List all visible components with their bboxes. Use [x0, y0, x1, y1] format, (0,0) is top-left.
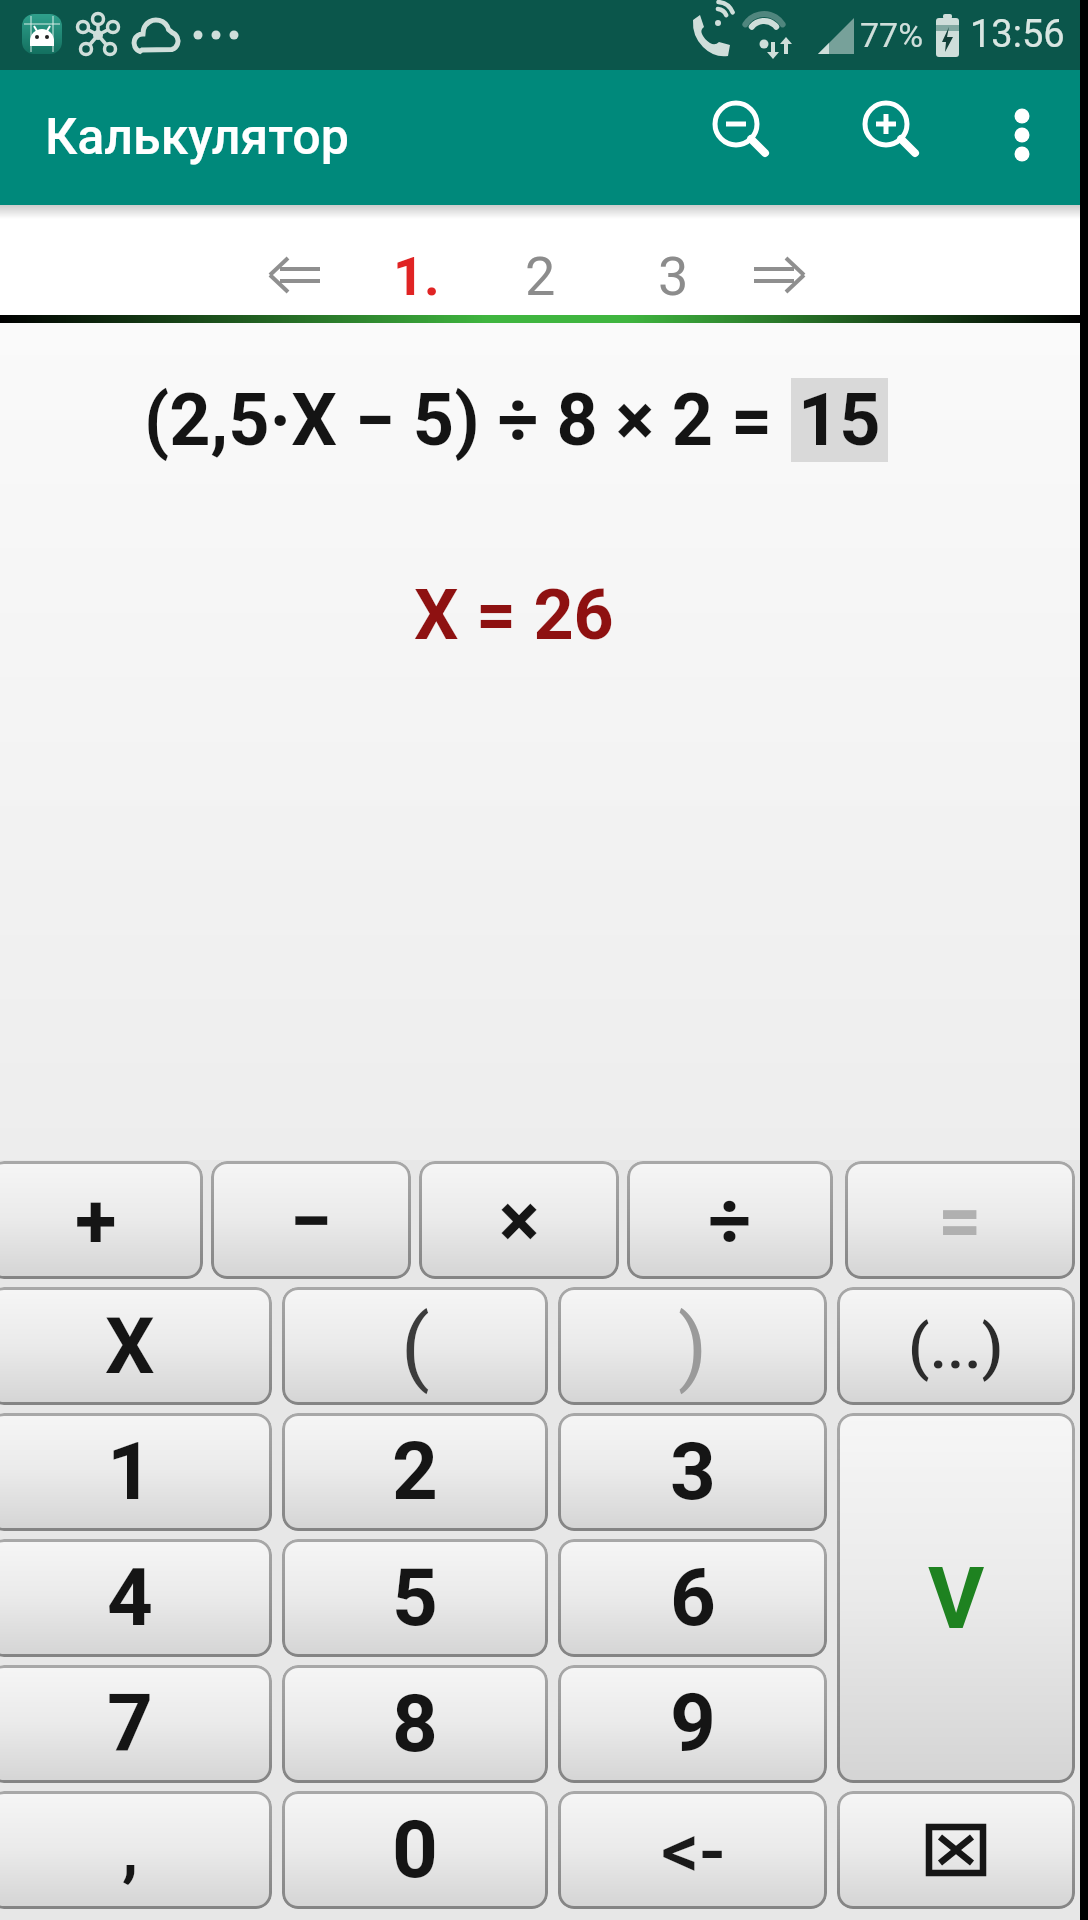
staticText: 7	[107, 1677, 153, 1771]
button[interactable]: <-	[558, 1791, 827, 1909]
button[interactable]: =	[845, 1161, 1075, 1279]
button[interactable]: 4	[0, 1539, 272, 1657]
button[interactable]: 8	[282, 1665, 548, 1783]
staticText: (...)	[908, 1310, 1004, 1383]
staticText: 77%	[860, 15, 924, 55]
button[interactable]: 6	[558, 1539, 827, 1657]
button[interactable]	[856, 94, 936, 174]
staticText: V	[928, 1548, 985, 1649]
button[interactable]: X	[0, 1287, 272, 1405]
button[interactable]: 3	[558, 1413, 827, 1531]
button[interactable]: V	[837, 1413, 1075, 1783]
staticText: )	[678, 1297, 708, 1395]
staticText: 8	[392, 1677, 438, 1771]
button[interactable]: 7	[0, 1665, 272, 1783]
staticText: 5	[392, 1551, 438, 1645]
staticText: 1.	[393, 245, 440, 308]
button[interactable]	[837, 1791, 1075, 1909]
button[interactable]: ÷	[627, 1161, 833, 1279]
staticText: 3	[658, 245, 689, 308]
button[interactable]: 1.	[380, 240, 452, 312]
button[interactable]: 3	[637, 240, 709, 312]
staticText: =	[938, 1176, 982, 1265]
button[interactable]: 9	[558, 1665, 827, 1783]
button[interactable]: 1	[0, 1413, 272, 1531]
staticText: ÷	[708, 1176, 752, 1265]
button[interactable]	[258, 238, 332, 312]
staticText: 13:56	[970, 12, 1065, 57]
staticText: 3	[670, 1425, 716, 1519]
button[interactable]: −	[211, 1161, 411, 1279]
button[interactable]: 2	[282, 1413, 548, 1531]
button[interactable]: +	[0, 1161, 203, 1279]
button[interactable]: 0	[282, 1791, 548, 1909]
staticText: −	[290, 1176, 333, 1265]
button[interactable]: )	[558, 1287, 827, 1405]
staticText: 0	[392, 1803, 438, 1897]
staticText: 2	[392, 1425, 438, 1519]
staticText: 9	[670, 1677, 716, 1771]
button[interactable]: 5	[282, 1539, 548, 1657]
staticText: 15	[798, 378, 881, 462]
staticText: 6	[670, 1551, 716, 1645]
staticText: (	[401, 1297, 430, 1395]
staticText: ×	[499, 1176, 540, 1265]
staticText: (2,5·X − 5) ÷ 8 × 2 =	[144, 378, 791, 462]
button[interactable]	[994, 104, 1050, 160]
staticText: X	[105, 1301, 155, 1392]
button[interactable]: 2	[504, 240, 576, 312]
staticText: Калькулятор	[45, 108, 349, 167]
staticText: X = 26	[414, 574, 614, 656]
button[interactable]: (...)	[837, 1287, 1075, 1405]
staticText: 4	[107, 1551, 153, 1645]
staticText: <-	[661, 1806, 725, 1895]
button[interactable]: ×	[419, 1161, 619, 1279]
staticText: +	[75, 1176, 117, 1265]
staticText: ,	[122, 1812, 139, 1889]
staticText: 2	[525, 245, 556, 308]
button[interactable]	[706, 94, 786, 174]
button[interactable]: (	[282, 1287, 548, 1405]
staticText: 1	[107, 1425, 153, 1519]
button[interactable]: ,	[0, 1791, 272, 1909]
button[interactable]	[742, 238, 816, 312]
